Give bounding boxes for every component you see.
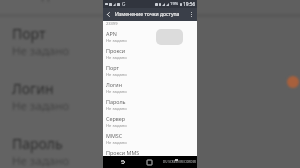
button[interactable]: Назад (118, 157, 128, 167)
staticText: 23399 (106, 21, 118, 26)
staticText: Не задано (106, 123, 127, 128)
button[interactable]: APN (103, 26, 197, 43)
staticText: Не задано (12, 43, 70, 59)
staticText: Пароль (106, 98, 126, 105)
button[interactable]: Порт (103, 60, 197, 77)
staticText: Изменение точки доступа (115, 11, 180, 18)
staticText: Логин (106, 81, 122, 88)
button[interactable]: Главный экран (144, 157, 154, 167)
staticText: Не задано (106, 89, 127, 94)
staticText: Не задано (106, 140, 127, 145)
staticText: MMSC (106, 132, 123, 139)
staticText: Не задано (12, 153, 70, 168)
staticText: DU SCREEN RECORDER (163, 160, 197, 164)
button[interactable]: Назад (104, 10, 113, 19)
staticText: G (122, 1, 126, 7)
staticText: Не задано (106, 38, 127, 43)
button[interactable]: Пароль (103, 94, 197, 111)
staticText: Порт (12, 24, 46, 43)
staticText: Не задано (12, 98, 70, 114)
staticText: Не задано (106, 72, 127, 77)
button[interactable]: Прокси (103, 43, 197, 60)
staticText: Не задано (106, 106, 127, 111)
staticText: Порт (106, 64, 119, 71)
staticText: Прокси MMS (106, 149, 140, 156)
button[interactable]: Сервер (103, 111, 197, 128)
staticText: Прокси (106, 47, 126, 54)
staticText: APN (106, 30, 117, 37)
button[interactable]: Прокси MMS (103, 145, 197, 156)
button[interactable]: Логин (103, 77, 197, 94)
staticText: 19:56 (183, 1, 196, 8)
staticText: Не задано (106, 55, 127, 60)
button[interactable]: Ещё (187, 10, 196, 19)
staticText: Пароль (12, 134, 63, 153)
button[interactable]: MMSC (103, 128, 197, 145)
staticText: Логин (12, 79, 54, 98)
staticText: 19% (170, 1, 179, 7)
staticText: Сервер (106, 115, 125, 122)
